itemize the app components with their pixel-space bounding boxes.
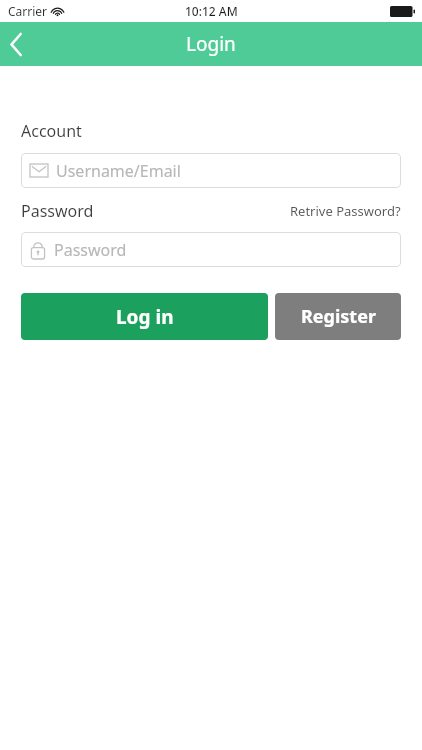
staticText: Account: [21, 120, 82, 142]
staticText: Login: [186, 31, 236, 57]
staticText: Password: [54, 239, 127, 261]
staticText: 10:12 AM: [185, 3, 238, 19]
staticText: Password: [21, 200, 94, 222]
staticText: Retrive Password?: [290, 202, 401, 220]
button[interactable]: Username/Email: [21, 153, 401, 188]
button[interactable]: Back: [0, 22, 44, 66]
button[interactable]: Log in: [21, 293, 268, 340]
button[interactable]: Password: [21, 232, 401, 267]
button[interactable]: Register: [275, 293, 401, 340]
staticText: Log in: [116, 304, 174, 330]
staticText: Carrier: [8, 3, 48, 19]
staticText: Username/Email: [56, 160, 181, 182]
staticText: Register: [301, 304, 376, 329]
button[interactable]: Retrive Password?: [290, 202, 401, 220]
